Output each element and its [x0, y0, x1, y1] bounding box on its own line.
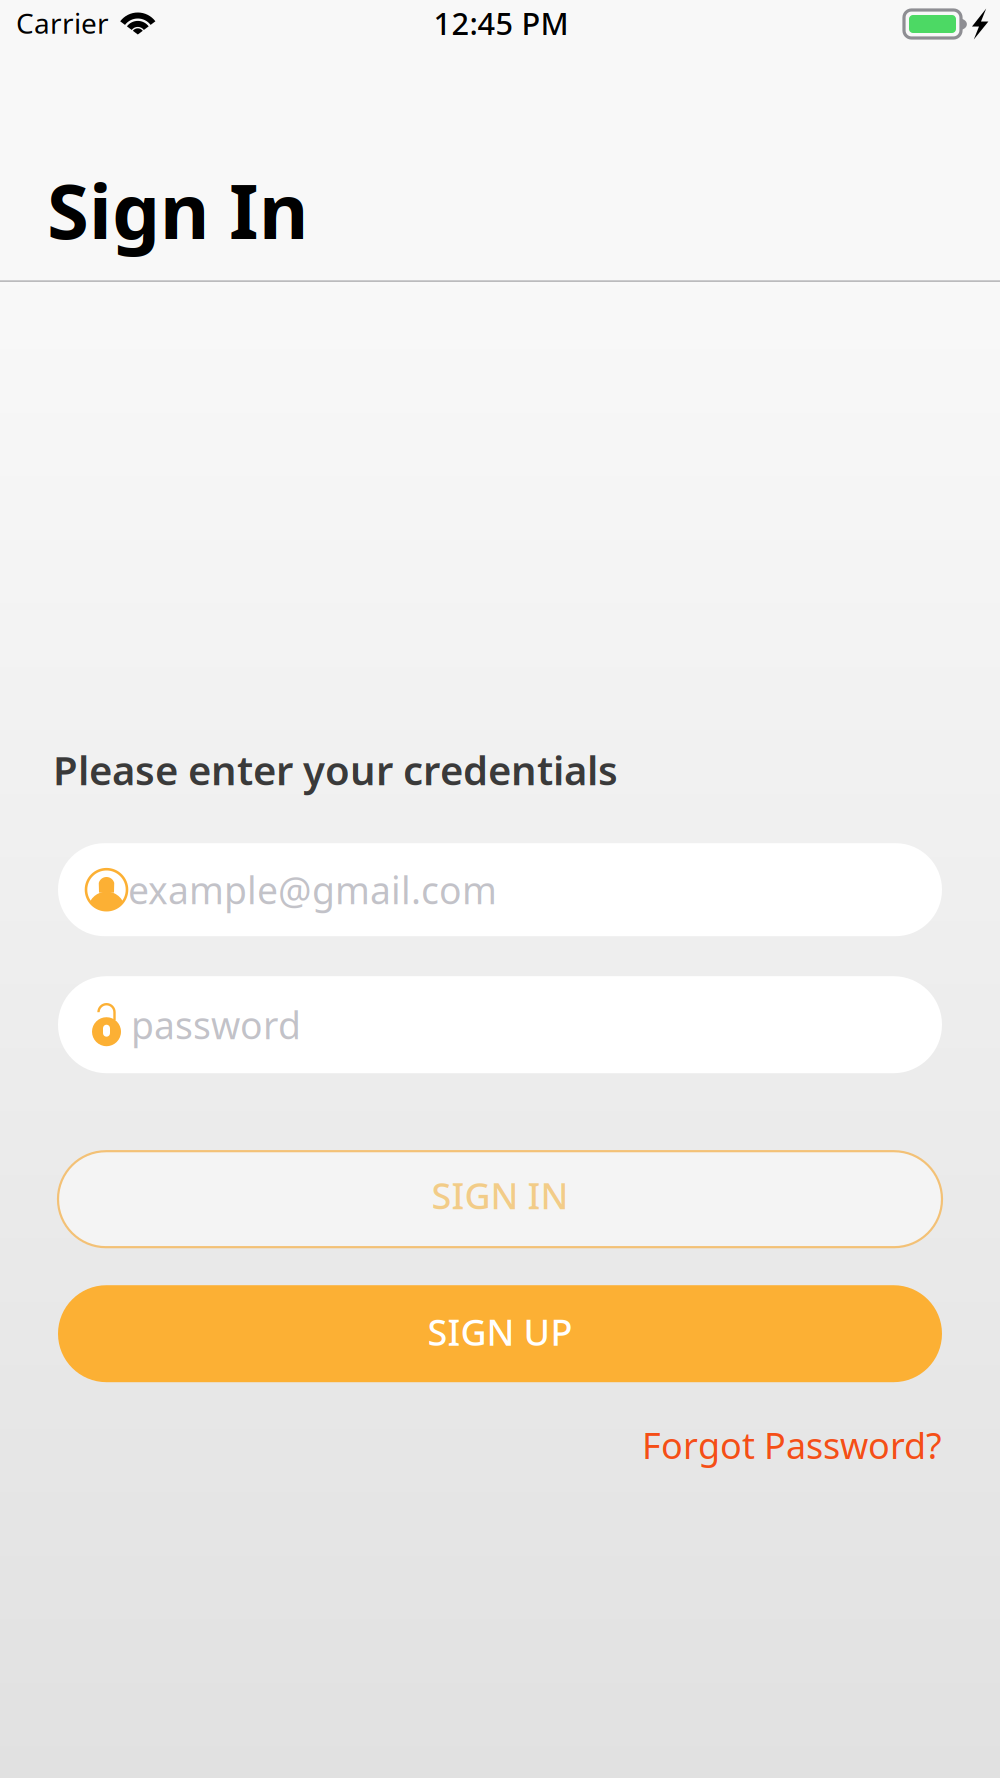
staticText: password: [131, 1000, 301, 1049]
staticText: SIGN IN: [431, 1171, 568, 1219]
staticText: 12:45 PM: [433, 3, 568, 43]
staticText: Forgot Password?: [642, 1421, 942, 1469]
button[interactable]: SIGN UP: [58, 1285, 942, 1382]
button[interactable]: Forgot Password?: [642, 1421, 942, 1469]
button[interactable]: Password: [58, 976, 942, 1073]
button[interactable]: SIGN IN: [58, 1151, 942, 1247]
staticText: example@gmail.com: [128, 865, 497, 914]
staticText: Sign In: [47, 159, 308, 260]
staticText: SIGN UP: [427, 1308, 572, 1356]
staticText: Please enter your credentials: [53, 743, 618, 796]
button[interactable]: Email address: [58, 843, 942, 936]
staticText: Carrier: [16, 4, 109, 42]
